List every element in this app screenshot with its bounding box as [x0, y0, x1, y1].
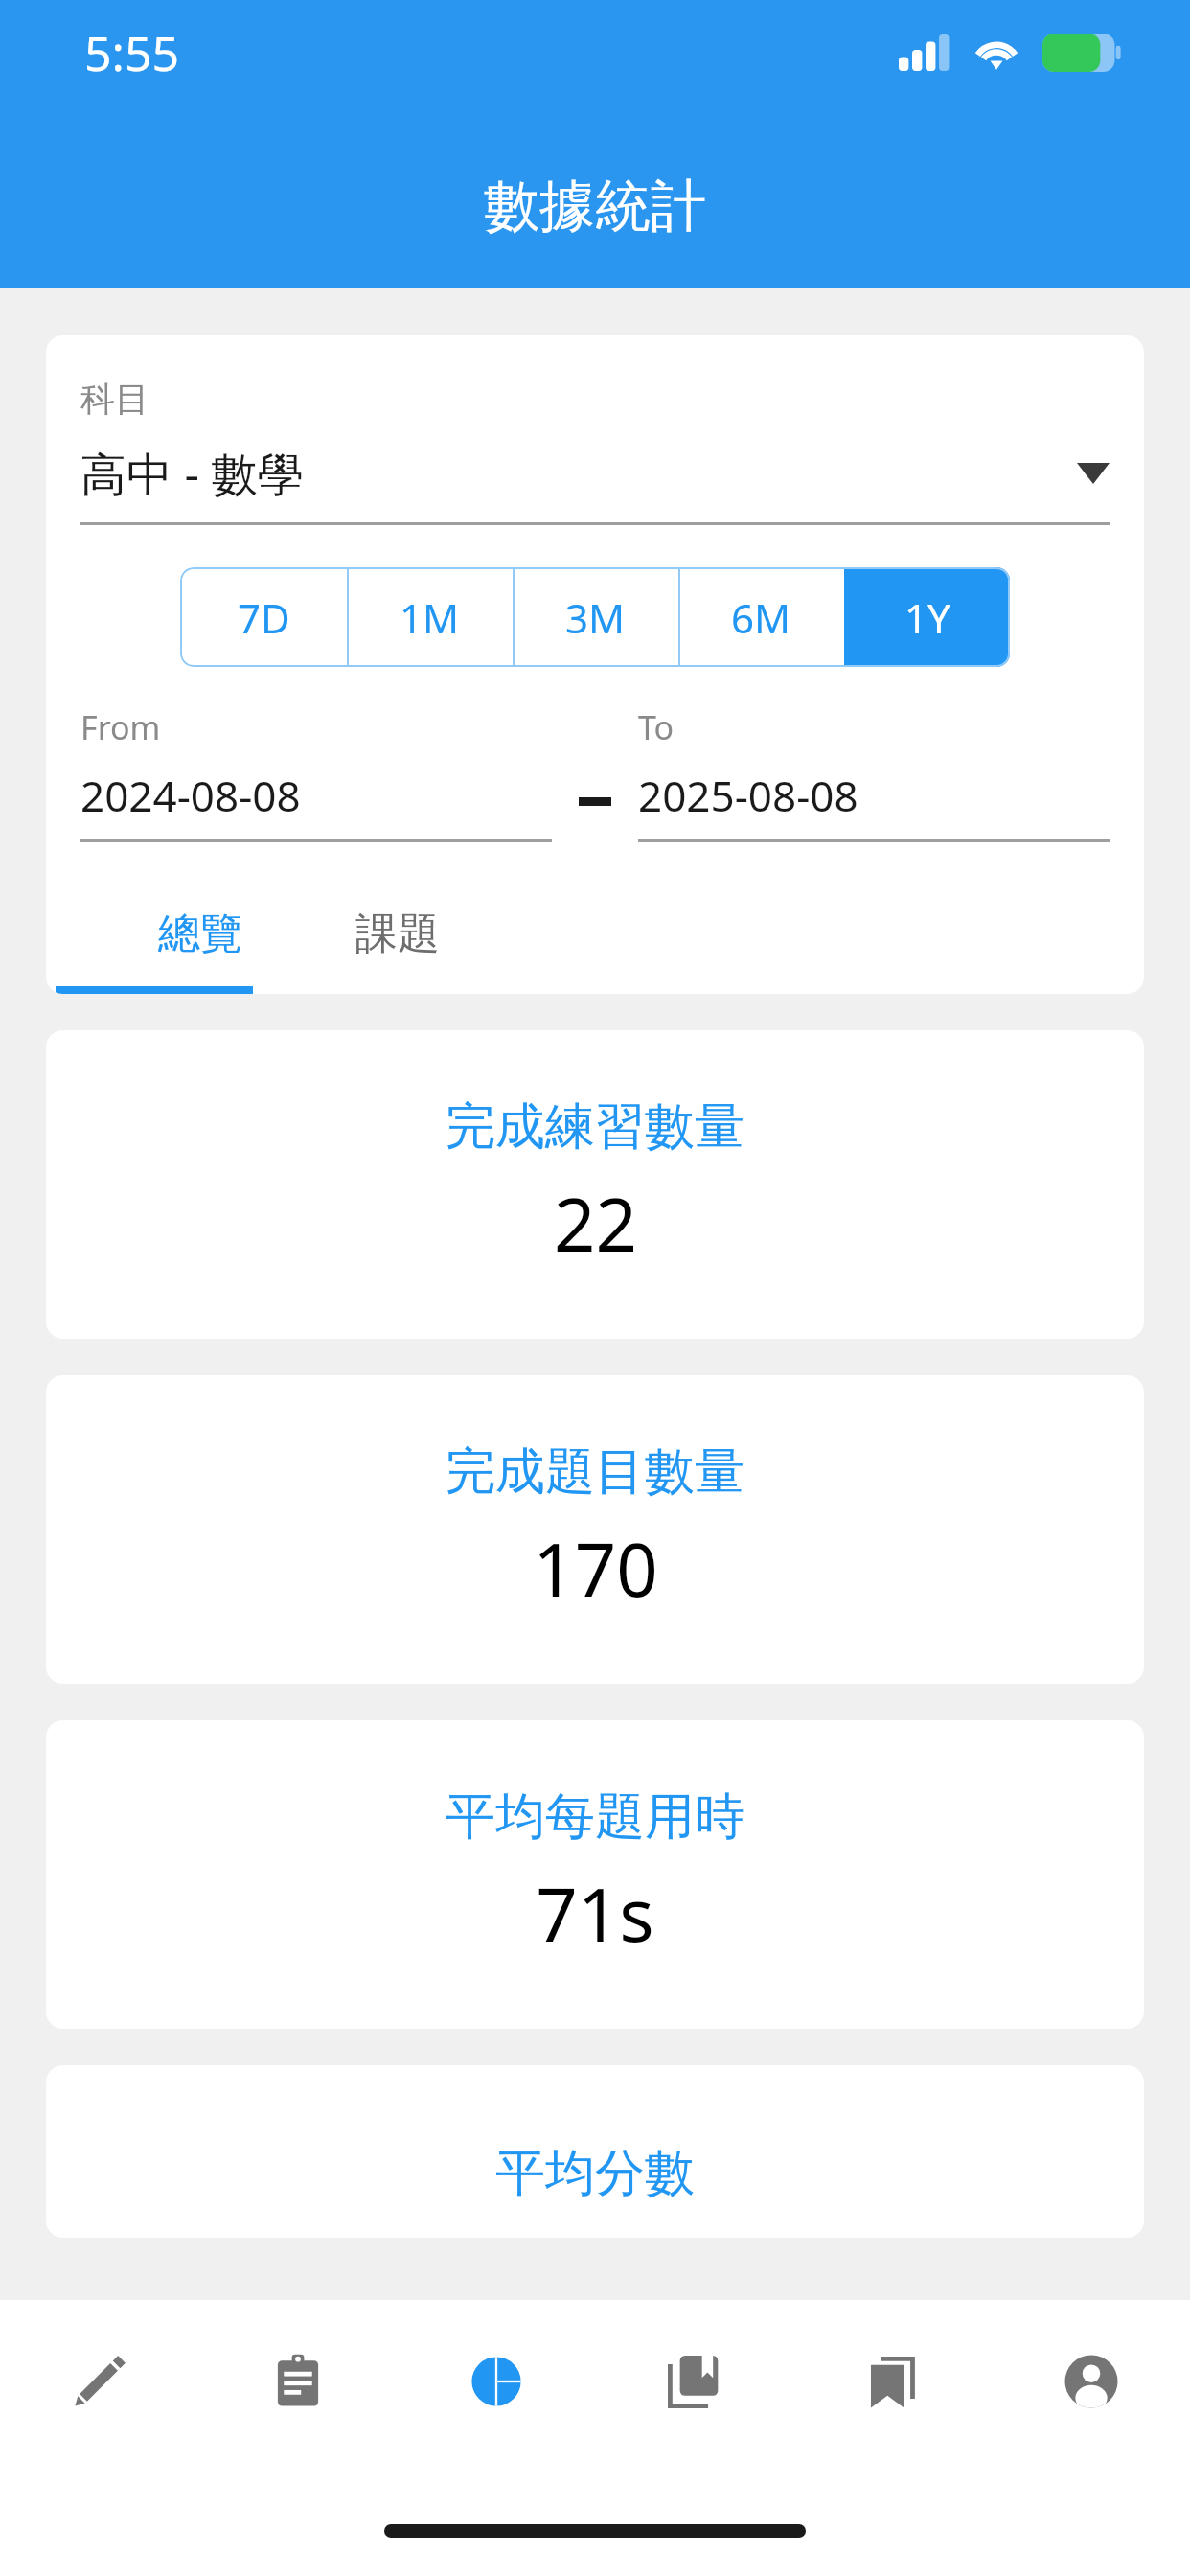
- button[interactable]: 課題: [299, 881, 496, 986]
- button[interactable]: Assignments: [198, 2300, 397, 2463]
- button[interactable]: 總覽: [102, 881, 299, 986]
- button[interactable]: Write: [0, 2300, 198, 2463]
- staticText: 5:55: [84, 20, 180, 85]
- staticText: 完成練習數量: [446, 1095, 744, 1159]
- staticText: 2025-08-08: [638, 767, 858, 824]
- button[interactable]: 3M: [513, 567, 678, 667]
- staticText: 7D: [238, 590, 290, 645]
- button[interactable]: Library: [595, 2300, 793, 2463]
- staticText: 22: [554, 1174, 637, 1274]
- staticText: 170: [533, 1519, 658, 1619]
- staticText: 2024-08-08: [80, 767, 301, 824]
- staticText: 高中 - 數學: [80, 442, 1077, 505]
- staticText: 71s: [536, 1864, 654, 1964]
- staticText: 完成題目數量: [446, 1440, 744, 1504]
- button[interactable]: Account: [992, 2300, 1190, 2463]
- button[interactable]: 完成練習數量: [46, 1030, 1144, 1339]
- staticText: 平均每題用時: [446, 1785, 744, 1849]
- staticText: 6M: [731, 590, 791, 645]
- staticText: 3M: [565, 590, 626, 645]
- staticText: 1Y: [904, 590, 950, 645]
- staticText: To: [638, 705, 675, 749]
- button[interactable]: From: [80, 705, 552, 842]
- staticText: 平均分數: [495, 2142, 695, 2205]
- button[interactable]: 平均每題用時: [46, 1720, 1144, 2029]
- button[interactable]: 6M: [678, 567, 844, 667]
- staticText: From: [80, 705, 161, 749]
- staticText: 數據統計: [484, 172, 706, 241]
- staticText: 總覽: [158, 908, 242, 960]
- button[interactable]: Statistics: [397, 2300, 595, 2463]
- staticText: 課題: [355, 908, 440, 960]
- button[interactable]: 1M: [347, 567, 513, 667]
- other: Open subject dropdown: [1077, 463, 1110, 484]
- button[interactable]: 7D: [180, 567, 347, 667]
- staticText: 1M: [400, 590, 460, 645]
- button[interactable]: 高中 - 數學: [80, 442, 1110, 505]
- button[interactable]: 完成題目數量: [46, 1375, 1144, 1684]
- button[interactable]: 1Y: [844, 567, 1010, 667]
- staticText: 科目: [80, 378, 149, 421]
- button[interactable]: To: [638, 705, 1110, 842]
- button[interactable]: 平均分數: [46, 2065, 1144, 2238]
- button[interactable]: Bookmarks: [793, 2300, 992, 2463]
